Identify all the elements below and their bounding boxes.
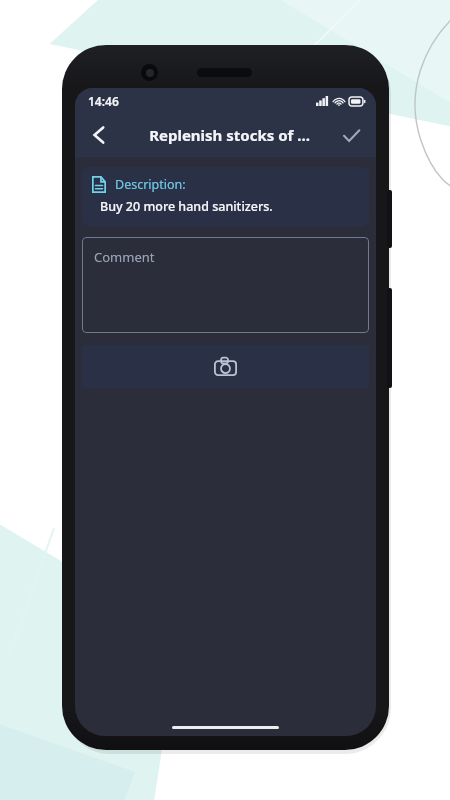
- staticText: Replenish stocks of ...: [149, 125, 310, 145]
- staticText: Comment: [94, 248, 155, 266]
- button[interactable]: Save: [331, 115, 371, 155]
- button[interactable]: Back: [79, 115, 119, 155]
- staticText: Buy 20 more hand sanitizers.: [100, 198, 273, 215]
- button[interactable]: Take photo: [82, 345, 369, 388]
- staticText: 14:46: [88, 93, 119, 109]
- staticText: Description:: [115, 176, 186, 193]
- button[interactable]: Description:: [82, 167, 369, 226]
- button[interactable]: Comment: [82, 237, 369, 333]
